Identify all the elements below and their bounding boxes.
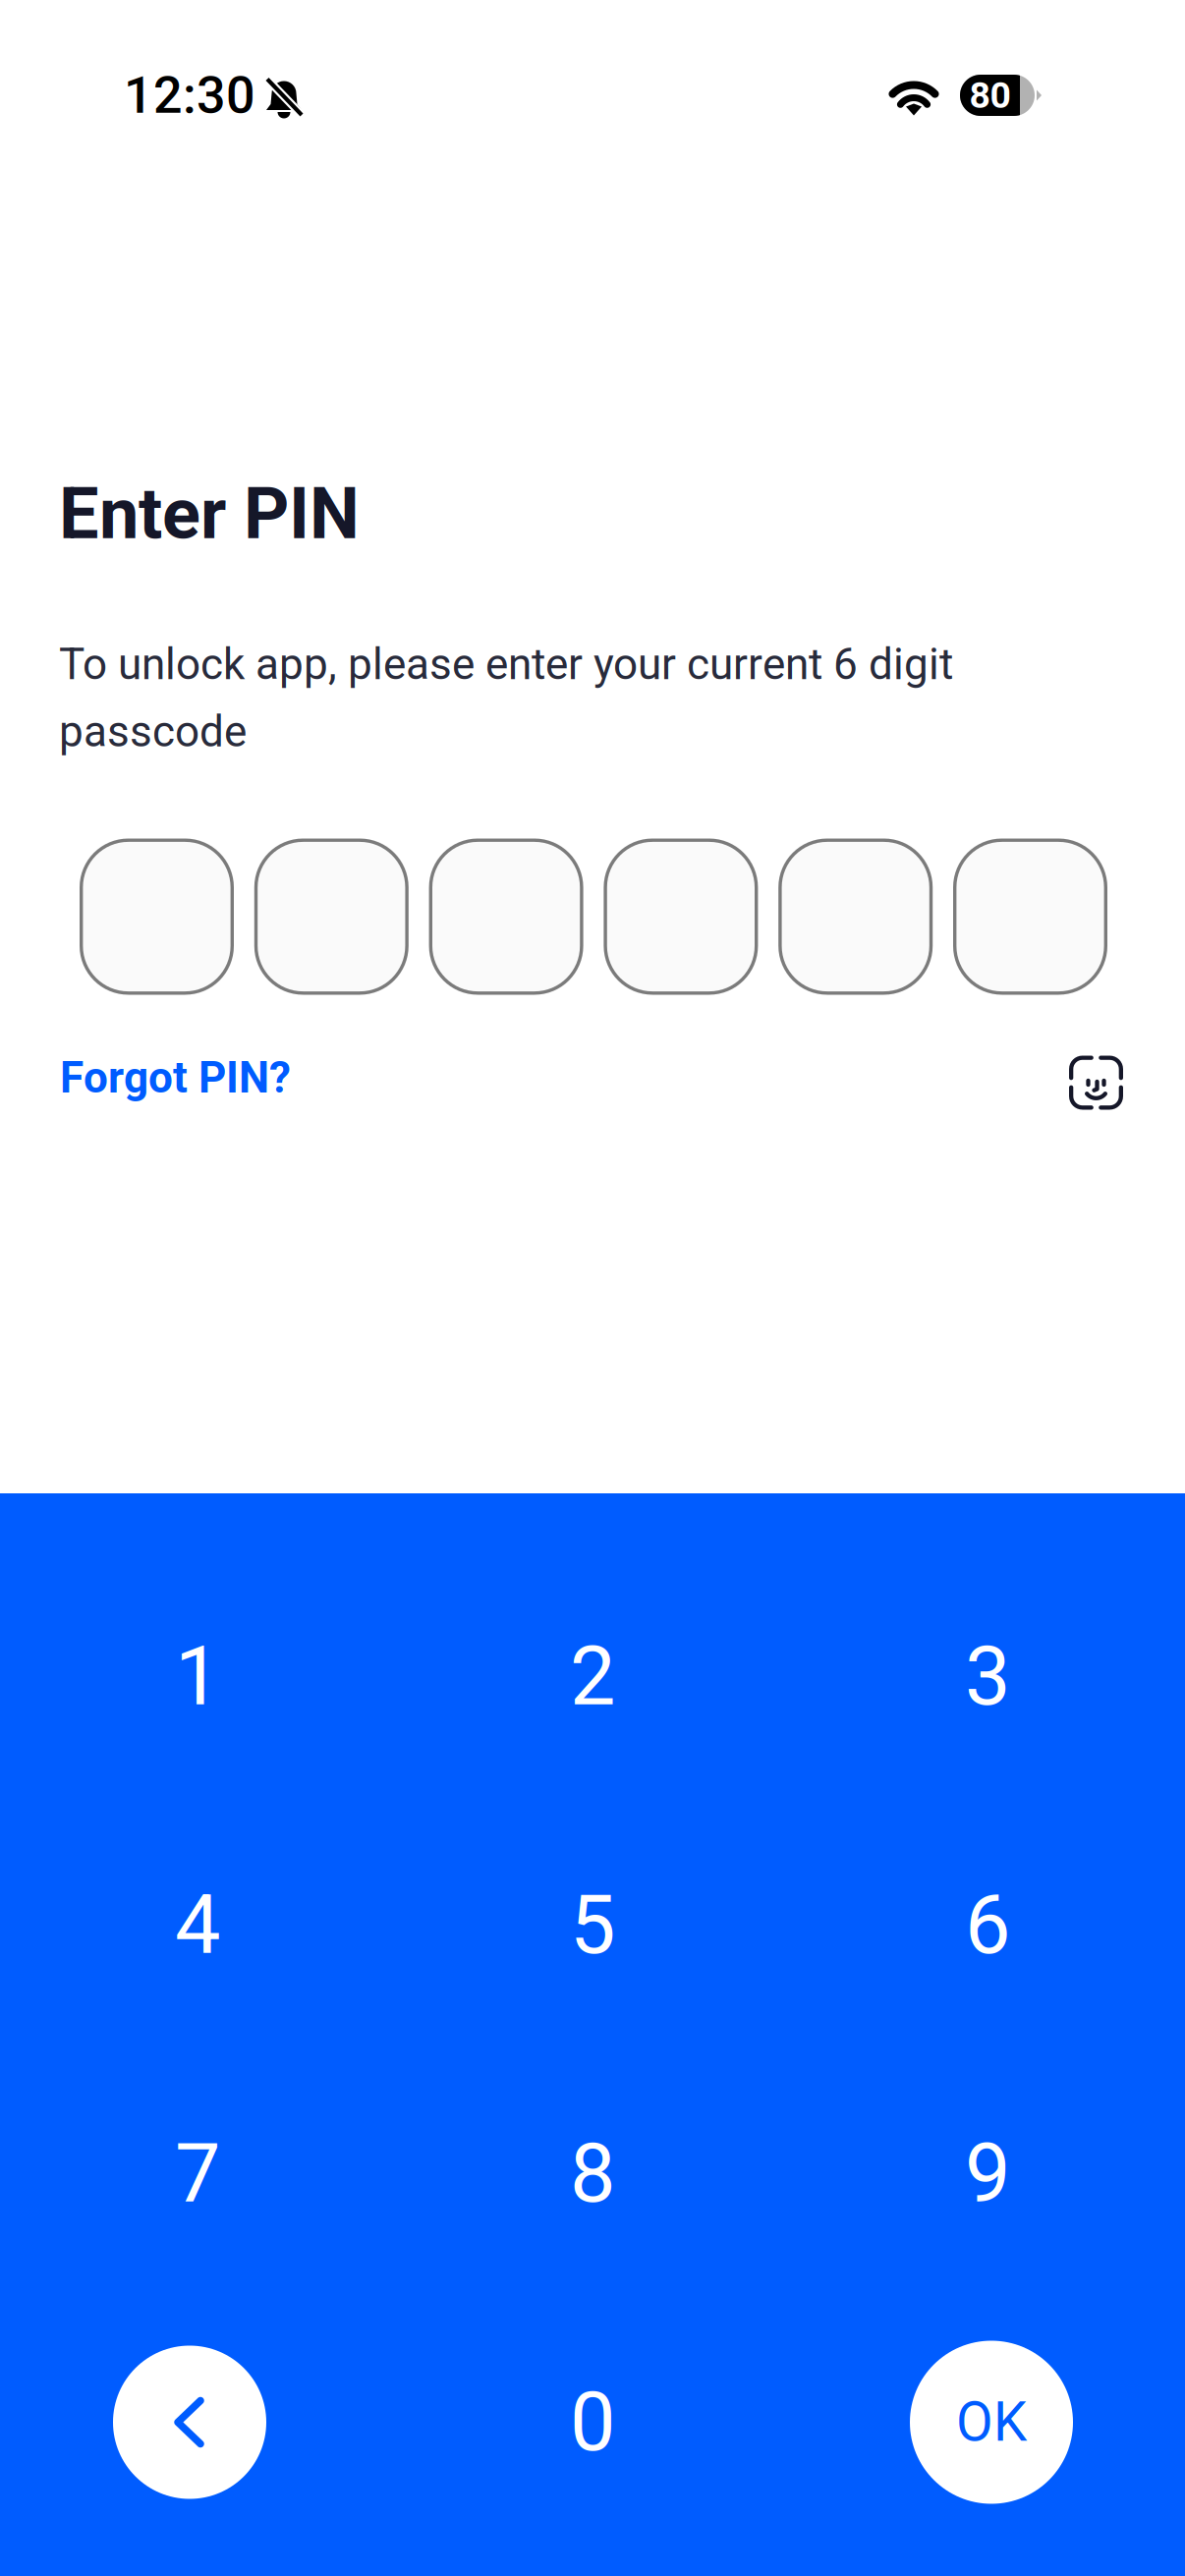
button[interactable]: 5 [395, 1801, 790, 2049]
staticText: Forgot PIN? [60, 1052, 291, 1103]
staticText: 7 [175, 2126, 220, 2221]
staticText: To unlock app, please enter your current… [59, 639, 953, 757]
button[interactable]: 9 [790, 2049, 1185, 2298]
button[interactable]: 0 [395, 2298, 790, 2547]
button[interactable]: 7 [0, 2049, 395, 2298]
staticText: 8 [570, 2126, 615, 2221]
staticText: 1 [175, 1629, 220, 1724]
staticText: 4 [175, 1878, 220, 1973]
staticText: 12:30 [124, 65, 255, 125]
button[interactable]: 6 [790, 1801, 1185, 2049]
staticText: 5 [570, 1878, 615, 1973]
button[interactable]: OK [790, 2298, 1185, 2547]
staticText: OK [956, 2391, 1027, 2454]
staticText: 6 [965, 1878, 1010, 1973]
button[interactable]: 8 [395, 2049, 790, 2298]
staticText: 3 [965, 1629, 1010, 1724]
staticText: 9 [965, 2126, 1010, 2221]
button[interactable]: 3 [790, 1552, 1185, 1801]
button[interactable]: 2 [395, 1552, 790, 1801]
button[interactable]: Forgot PIN? [60, 1052, 291, 1103]
button[interactable]: Delete [0, 2298, 395, 2547]
button[interactable]: Unlock with Face ID [1069, 1056, 1123, 1110]
button[interactable]: 1 [0, 1552, 395, 1801]
staticText: Enter PIN [59, 473, 360, 555]
button[interactable]: 4 [0, 1801, 395, 2049]
staticText: 2 [570, 1629, 615, 1724]
staticText: 80 [969, 74, 1011, 117]
staticText: 0 [570, 2375, 615, 2470]
